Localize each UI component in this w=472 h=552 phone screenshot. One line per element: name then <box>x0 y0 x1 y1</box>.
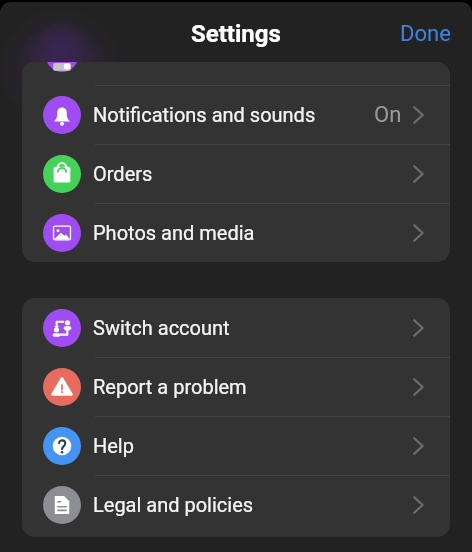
staticText: Photos and media <box>93 221 255 244</box>
staticText: Done <box>400 21 451 47</box>
button[interactable]: Legal and policies <box>22 475 450 534</box>
staticText: Orders <box>93 162 153 185</box>
button[interactable]: Photos and media <box>22 203 450 262</box>
button[interactable]: Report a problem <box>22 357 450 416</box>
button[interactable]: Orders <box>22 144 450 203</box>
staticText: Switch account <box>93 316 230 339</box>
button[interactable]: Done <box>382 3 472 49</box>
staticText: Legal and policies <box>93 493 254 516</box>
staticText: Settings <box>191 20 281 48</box>
staticText: Help <box>93 434 134 457</box>
button[interactable]: Help <box>22 416 450 475</box>
button[interactable]: Switch account <box>22 298 450 357</box>
staticText: Notifications and sounds <box>93 103 316 126</box>
staticText: On <box>374 102 402 128</box>
button[interactable] <box>22 62 450 85</box>
staticText: Report a problem <box>93 375 247 398</box>
button[interactable]: Notifications and sounds <box>22 85 450 144</box>
